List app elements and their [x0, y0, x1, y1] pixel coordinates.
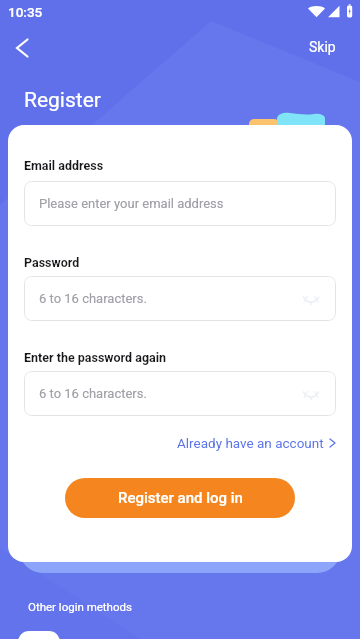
button[interactable]: 6 to 16 characters.	[24, 276, 336, 321]
staticText: Already have an account	[177, 435, 324, 451]
staticText: Skip	[309, 39, 336, 55]
staticText: Password	[24, 255, 80, 270]
staticText: 6 to 16 characters.	[39, 386, 147, 401]
button[interactable]: Please enter your email address	[24, 181, 336, 226]
staticText: 10:35	[8, 4, 43, 20]
button[interactable]: Back	[4, 30, 40, 66]
staticText: Please enter your email address	[39, 196, 224, 211]
staticText: Enter the password again	[24, 350, 167, 365]
staticText: Register and log in	[118, 489, 243, 507]
staticText: Other login methods	[28, 600, 132, 613]
staticText: Register	[24, 88, 101, 113]
staticText: 6 to 16 characters.	[39, 291, 147, 306]
button[interactable]: Already have an account	[173, 432, 340, 454]
button[interactable]: Skip	[303, 36, 342, 58]
button[interactable]: WeChat login	[18, 631, 60, 639]
button[interactable]: Register and log in	[65, 478, 295, 518]
button[interactable]: 6 to 16 characters.	[24, 371, 336, 416]
staticText: Email address	[24, 158, 104, 173]
